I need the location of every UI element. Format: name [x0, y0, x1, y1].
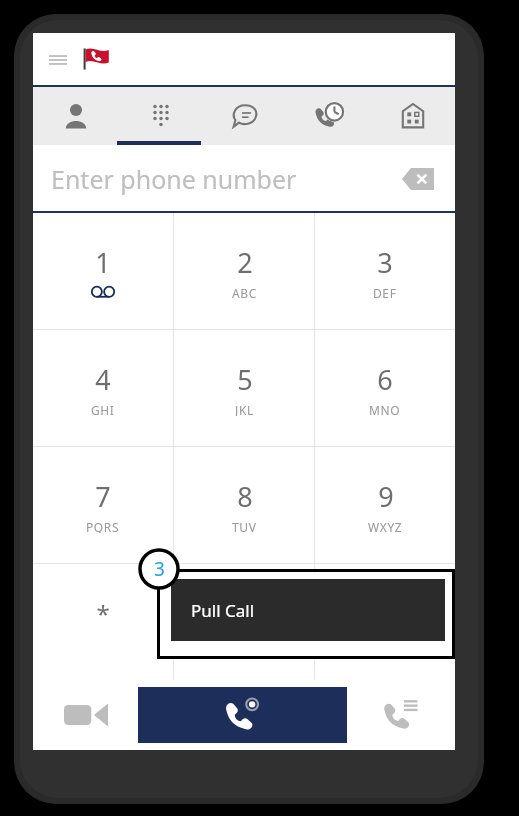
staticText: 0	[236, 595, 252, 632]
staticText: GHI	[91, 402, 115, 416]
button[interactable]: 0	[174, 564, 314, 680]
staticText: 3	[377, 244, 393, 281]
button[interactable]: 9	[315, 447, 455, 563]
staticText: PQRS	[86, 519, 120, 533]
button[interactable]: Menu	[41, 43, 75, 77]
staticText: *	[96, 597, 110, 630]
button[interactable]: Call options	[347, 680, 455, 750]
staticText: 2	[237, 244, 253, 281]
staticText: 8	[237, 478, 253, 515]
staticText: 6	[377, 361, 393, 398]
button[interactable]: 8	[174, 447, 314, 563]
button[interactable]: 5	[174, 330, 314, 446]
button[interactable]: 2	[174, 213, 314, 329]
button[interactable]: Video call	[33, 680, 138, 750]
staticText: 4	[95, 361, 111, 398]
button[interactable]: apps	[371, 87, 455, 145]
button[interactable]: Backspace	[395, 159, 441, 199]
button[interactable]: messages	[203, 87, 287, 145]
staticText: MNO	[369, 402, 401, 416]
button[interactable]: #	[315, 564, 455, 680]
staticText: JKL	[235, 402, 254, 416]
button[interactable]: 4	[33, 330, 173, 446]
button[interactable]: 7	[33, 447, 173, 563]
button[interactable]: 3	[315, 213, 455, 329]
button[interactable]: contacts	[33, 87, 118, 145]
button[interactable]: Pull Call	[171, 579, 445, 641]
button[interactable]: *	[33, 564, 173, 680]
button[interactable]: Call	[138, 687, 347, 743]
staticText: 5	[237, 361, 253, 398]
button[interactable]: dialpad	[118, 87, 203, 145]
staticText: ABC	[232, 285, 257, 299]
staticText: 9	[378, 478, 394, 515]
button[interactable]: App logo	[79, 43, 117, 77]
button[interactable]: 6	[315, 330, 455, 446]
staticText: +	[240, 636, 248, 650]
staticText: DEF	[373, 285, 397, 299]
staticText: Enter phone number	[51, 162, 395, 196]
staticText: WXYZ	[368, 519, 403, 533]
staticText: 3	[154, 556, 165, 582]
staticText: 1	[95, 244, 111, 281]
button[interactable]: 1	[33, 213, 173, 329]
staticText: TUV	[232, 519, 257, 533]
button[interactable]: history	[287, 87, 371, 145]
staticText: Pull Call	[191, 599, 255, 622]
staticText: 7	[95, 478, 111, 515]
